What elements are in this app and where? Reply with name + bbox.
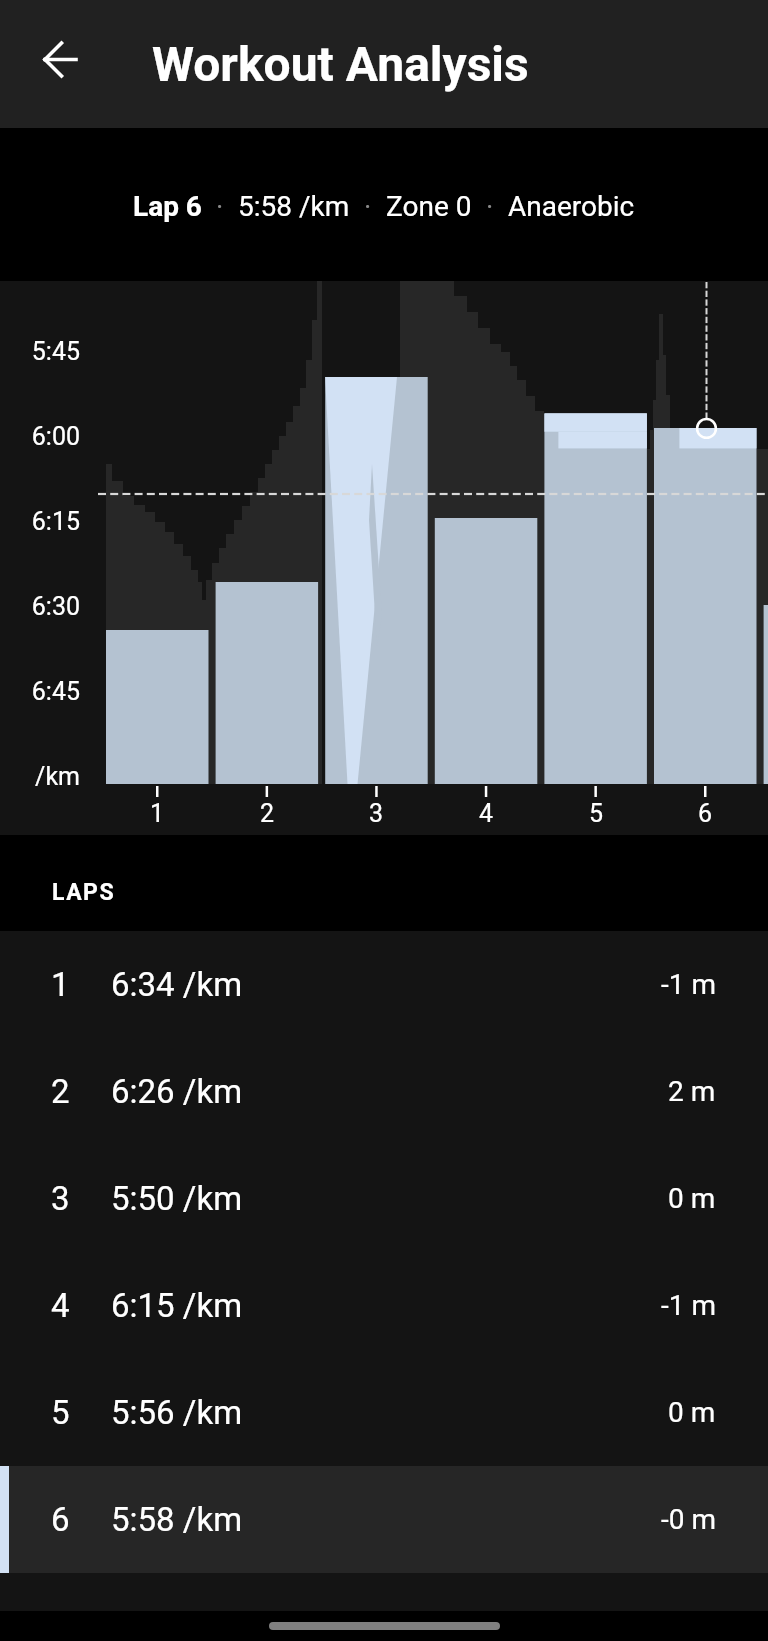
button[interactable]: 4 (0, 1252, 768, 1359)
staticText: 2 (51, 1072, 70, 1111)
staticText: 6:15 (0, 507, 80, 536)
staticText: 4 (466, 799, 506, 828)
staticText: 6:45 (0, 677, 80, 706)
staticText: 5:50 /km (111, 1179, 243, 1218)
staticText: 5 (576, 799, 616, 828)
staticText: 4 (51, 1286, 70, 1325)
staticText: 6 (51, 1500, 70, 1539)
staticText: 6 (685, 799, 725, 828)
staticText: · (364, 190, 372, 223)
staticText: -0 m (661, 1503, 716, 1536)
staticText: 3 (51, 1179, 70, 1218)
staticText: 3 (356, 799, 396, 828)
staticText: 6:34 /km (111, 965, 243, 1004)
staticText: 6:26 /km (111, 1072, 243, 1111)
staticText: 5:58 /km (238, 190, 350, 223)
staticText: · (216, 190, 224, 223)
button[interactable]: 5 (0, 1359, 768, 1466)
button[interactable]: 1 (0, 931, 768, 1038)
staticText: Anaerobic (508, 190, 635, 223)
staticText: 1 (137, 799, 177, 828)
staticText: 0 m (668, 1396, 716, 1429)
staticText: 2 m (668, 1075, 716, 1108)
staticText: 6:00 (0, 422, 80, 451)
staticText: Zone 0 (386, 190, 472, 223)
staticText: 0 m (668, 1182, 716, 1215)
staticText: 5:45 (0, 337, 80, 366)
staticText: · (486, 190, 494, 223)
button[interactable]: Back (12, 16, 108, 112)
staticText: /km (0, 762, 80, 791)
staticText: -1 m (661, 968, 716, 1001)
staticText: 2 (247, 799, 287, 828)
staticText: Workout Analysis (152, 36, 529, 92)
staticText: Lap 6 (133, 190, 202, 223)
button[interactable]: 3 (0, 1145, 768, 1252)
staticText: 5:56 /km (111, 1393, 243, 1432)
button[interactable]: 2 (0, 1038, 768, 1145)
staticText: 5:58 /km (111, 1500, 243, 1539)
staticText: 6:30 (0, 592, 80, 621)
staticText: 5 (51, 1393, 70, 1432)
staticText: -1 m (661, 1289, 716, 1322)
button[interactable]: 6 (0, 1466, 768, 1573)
staticText: 1 (51, 965, 70, 1004)
staticText: LAPS (52, 879, 116, 906)
staticText: 6:15 /km (111, 1286, 243, 1325)
